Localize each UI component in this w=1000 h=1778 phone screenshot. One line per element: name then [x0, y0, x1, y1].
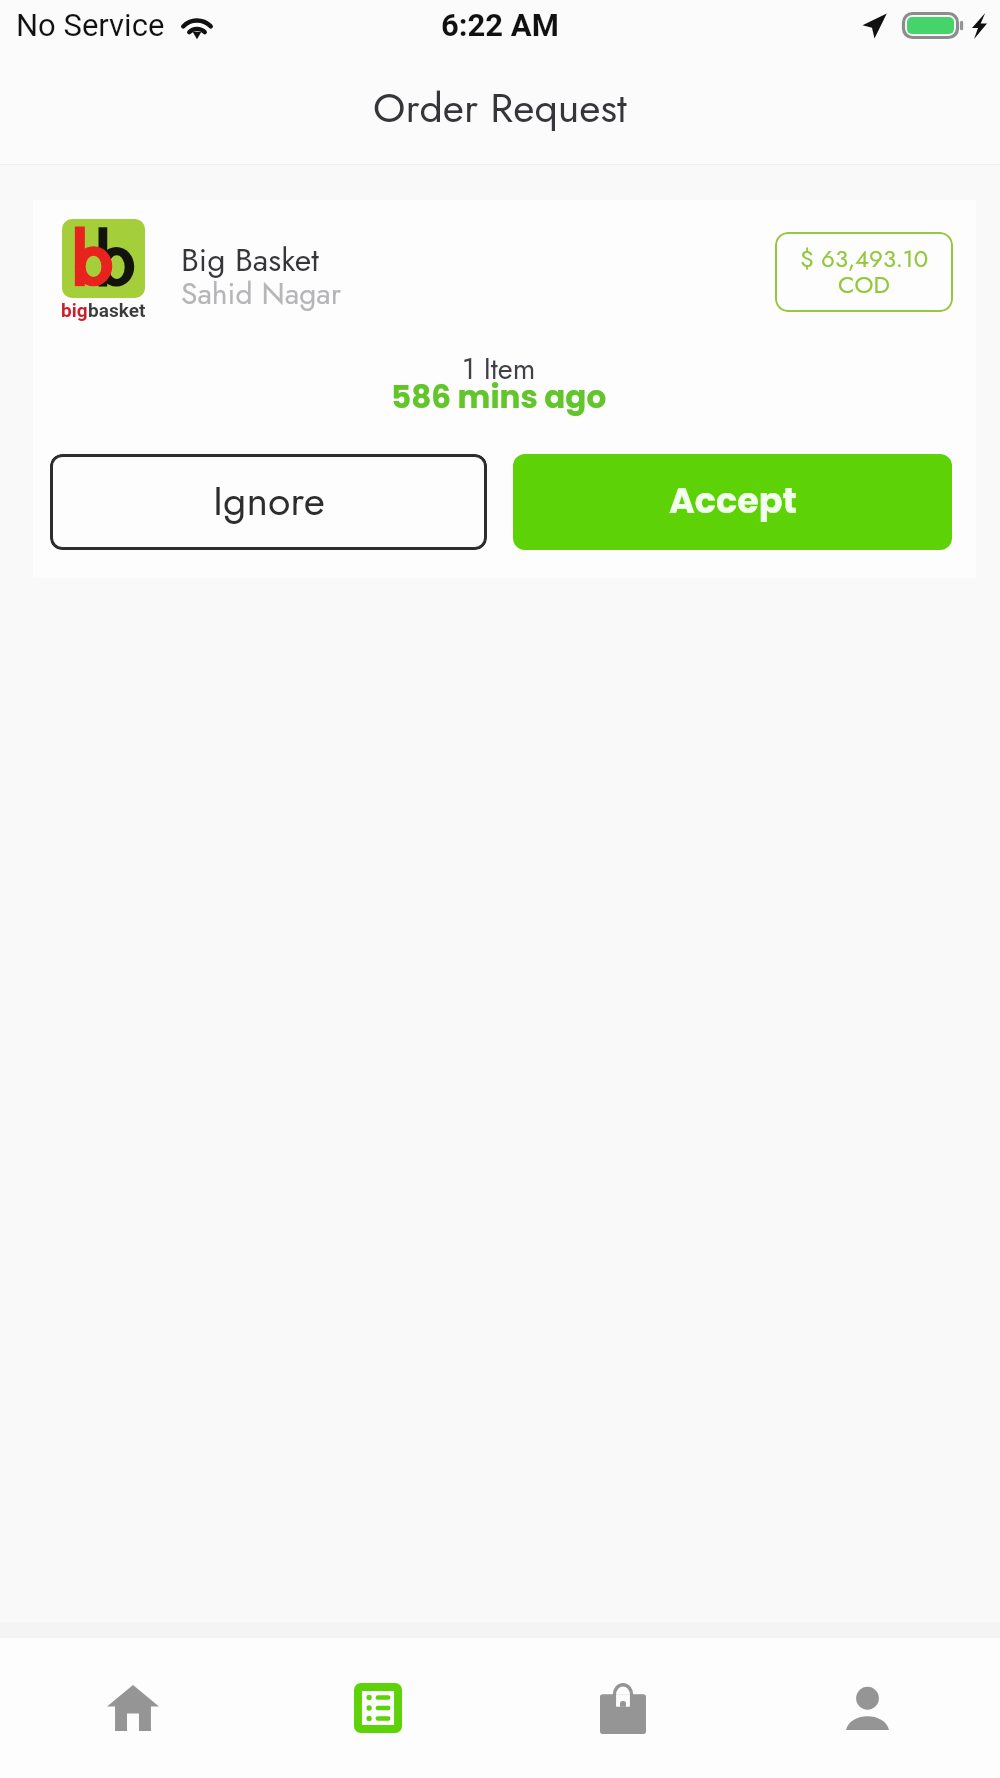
- staticText: Sahid Nagar: [181, 272, 342, 315]
- staticText: $ 63,493.10: [800, 241, 929, 276]
- button[interactable]: Shop: [500, 1638, 745, 1778]
- button[interactable]: Profile: [745, 1638, 990, 1778]
- button[interactable]: $ 63,493.10: [775, 232, 953, 312]
- button[interactable]: Orders: [255, 1638, 500, 1778]
- staticText: 1 Item: [462, 348, 536, 390]
- staticText: basket: [88, 299, 146, 321]
- staticText: big: [61, 299, 88, 321]
- staticText: 6:22 AM: [441, 7, 559, 43]
- button[interactable]: Accept: [513, 454, 952, 550]
- staticText: 586 mins ago: [391, 375, 607, 418]
- staticText: Big Basket: [181, 237, 319, 283]
- staticText: Order Request: [373, 78, 627, 137]
- staticText: No Service: [16, 7, 165, 43]
- button[interactable]: Ignore: [50, 454, 487, 550]
- button[interactable]: Home: [10, 1638, 255, 1778]
- staticText: Ignore: [213, 471, 325, 530]
- staticText: COD: [838, 267, 890, 302]
- staticText: Accept: [669, 476, 797, 525]
